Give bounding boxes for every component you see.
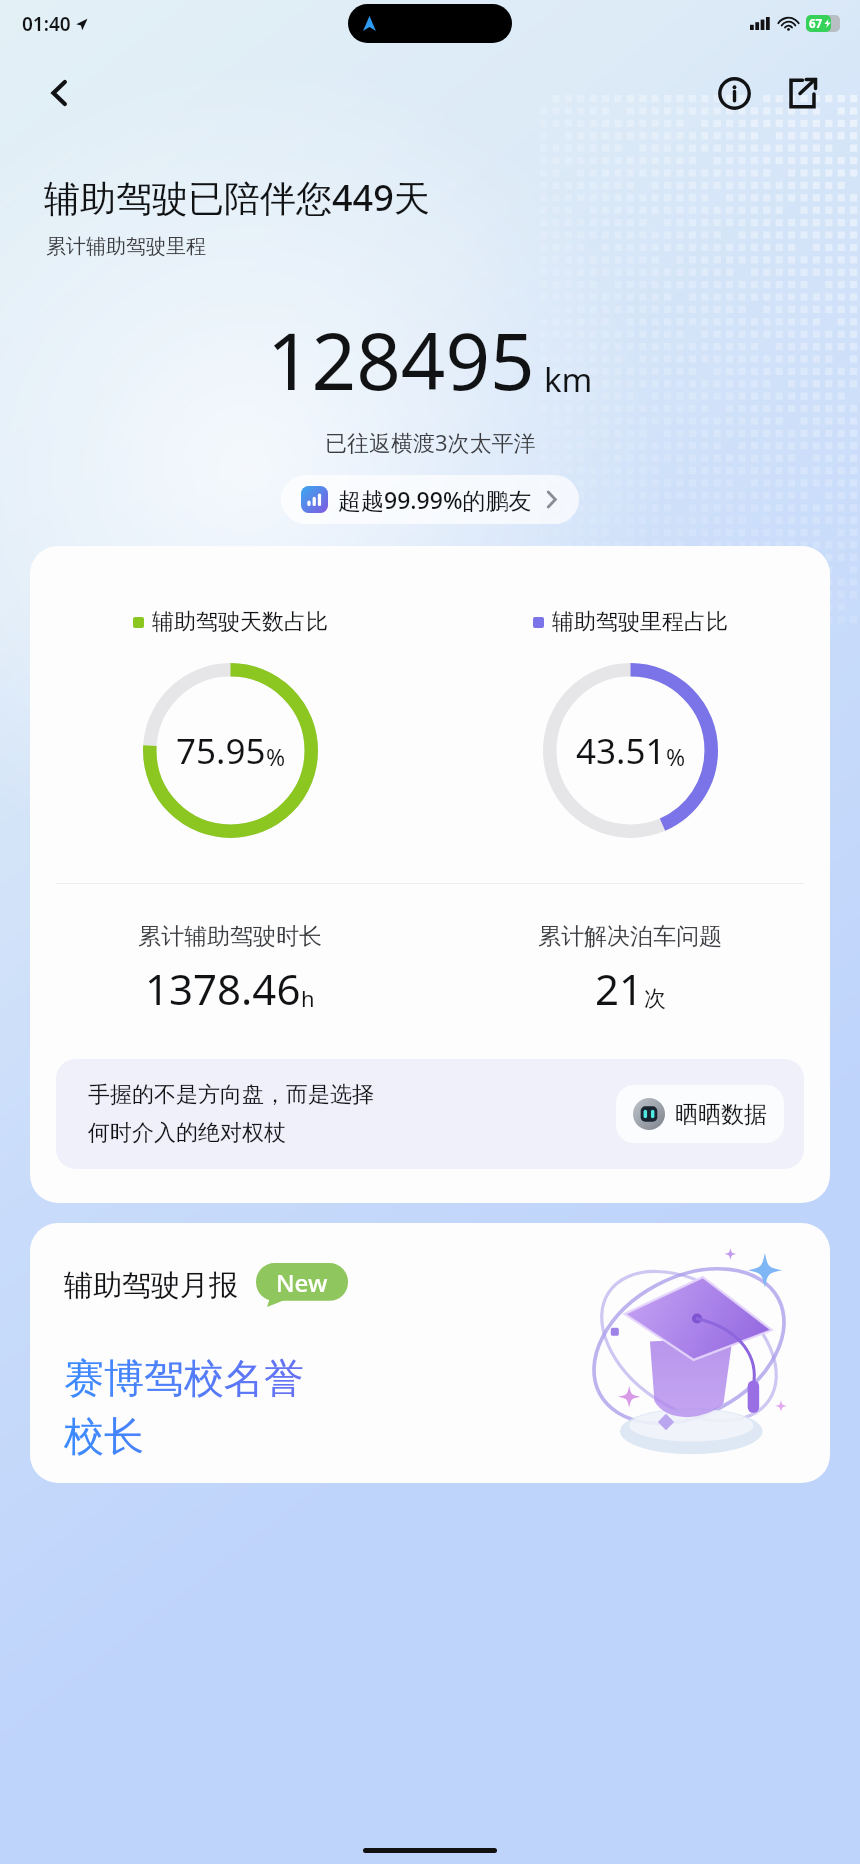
staticText: 超越99.99%的鹏友 [338,484,532,515]
button[interactable]: Share [778,69,826,117]
staticText: 43.51 [576,727,666,775]
staticText: 辅助驾驶月报 [64,1267,238,1304]
staticText: 已往返横渡3次太平洋 [325,427,536,457]
staticText: 21 [595,960,644,1017]
staticText: 辅助驾驶已陪伴您449天 [44,173,430,222]
button[interactable]: Info [710,69,758,117]
staticText: 校长 [64,1411,144,1461]
staticText: 75.95 [176,727,266,775]
staticText: 次 [644,985,666,1013]
staticText: km [544,357,593,402]
staticText: 何时介入的绝对权杖 [88,1119,286,1147]
staticText: 1378.46 [145,960,301,1017]
staticText: h [301,983,315,1013]
staticText: 晒晒数据 [675,1100,767,1129]
staticText: 手握的不是方向盘，而是选择 [88,1081,374,1109]
staticText: % [266,741,286,772]
staticText: 辅助驾驶里程占比 [552,608,728,636]
button[interactable]: Back [38,71,82,115]
staticText: % [666,741,686,772]
button[interactable]: 晒晒数据 [616,1085,784,1143]
staticText: 辅助驾驶天数占比 [152,608,328,636]
staticText: 01:40 [22,11,71,37]
staticText: New [276,1266,328,1299]
staticText: 128495 [267,307,535,413]
button[interactable]: 辅助驾驶月报 [30,1223,830,1483]
staticText: 赛博驾校名誉 [64,1353,304,1403]
staticText: 累计辅助驾驶里程 [46,234,206,259]
staticText: 累计辅助驾驶时长 [138,922,322,951]
button[interactable]: 超越99.99%的鹏友 [281,475,579,524]
staticText: 累计解决泊车问题 [538,922,722,951]
staticText: 67 [809,16,823,32]
